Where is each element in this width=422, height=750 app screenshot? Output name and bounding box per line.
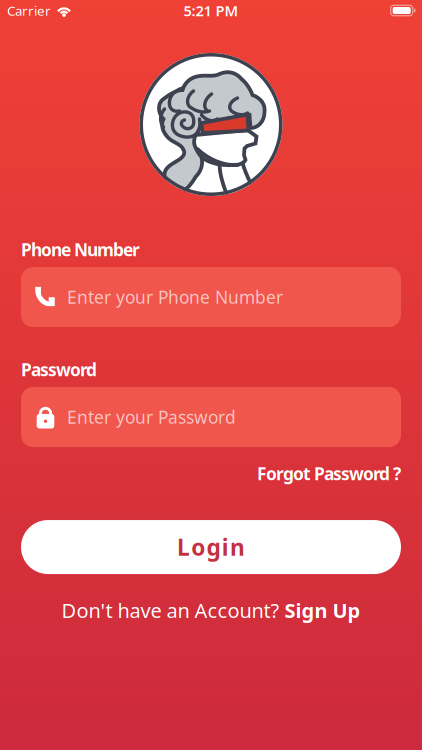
button[interactable]: Forgot Password ? [257,462,401,485]
staticText: Enter your Password [67,405,236,428]
staticText: Enter your Phone Number [67,285,283,308]
staticText: Password [21,358,97,381]
button[interactable]: Don't have an Account? [21,597,401,624]
button[interactable]: Enter your Phone Number [21,267,401,327]
button[interactable]: Login [21,520,401,574]
staticText: Phone Number [21,238,140,261]
staticText: 5:21 PM [183,1,238,20]
staticText: Forgot Password ? [257,462,401,485]
staticText: Login [177,532,245,562]
staticText: Sign Up [284,597,360,624]
staticText: Carrier [7,2,51,19]
button[interactable]: Enter your Password [21,387,401,447]
staticText: Don't have an Account? [61,597,279,624]
